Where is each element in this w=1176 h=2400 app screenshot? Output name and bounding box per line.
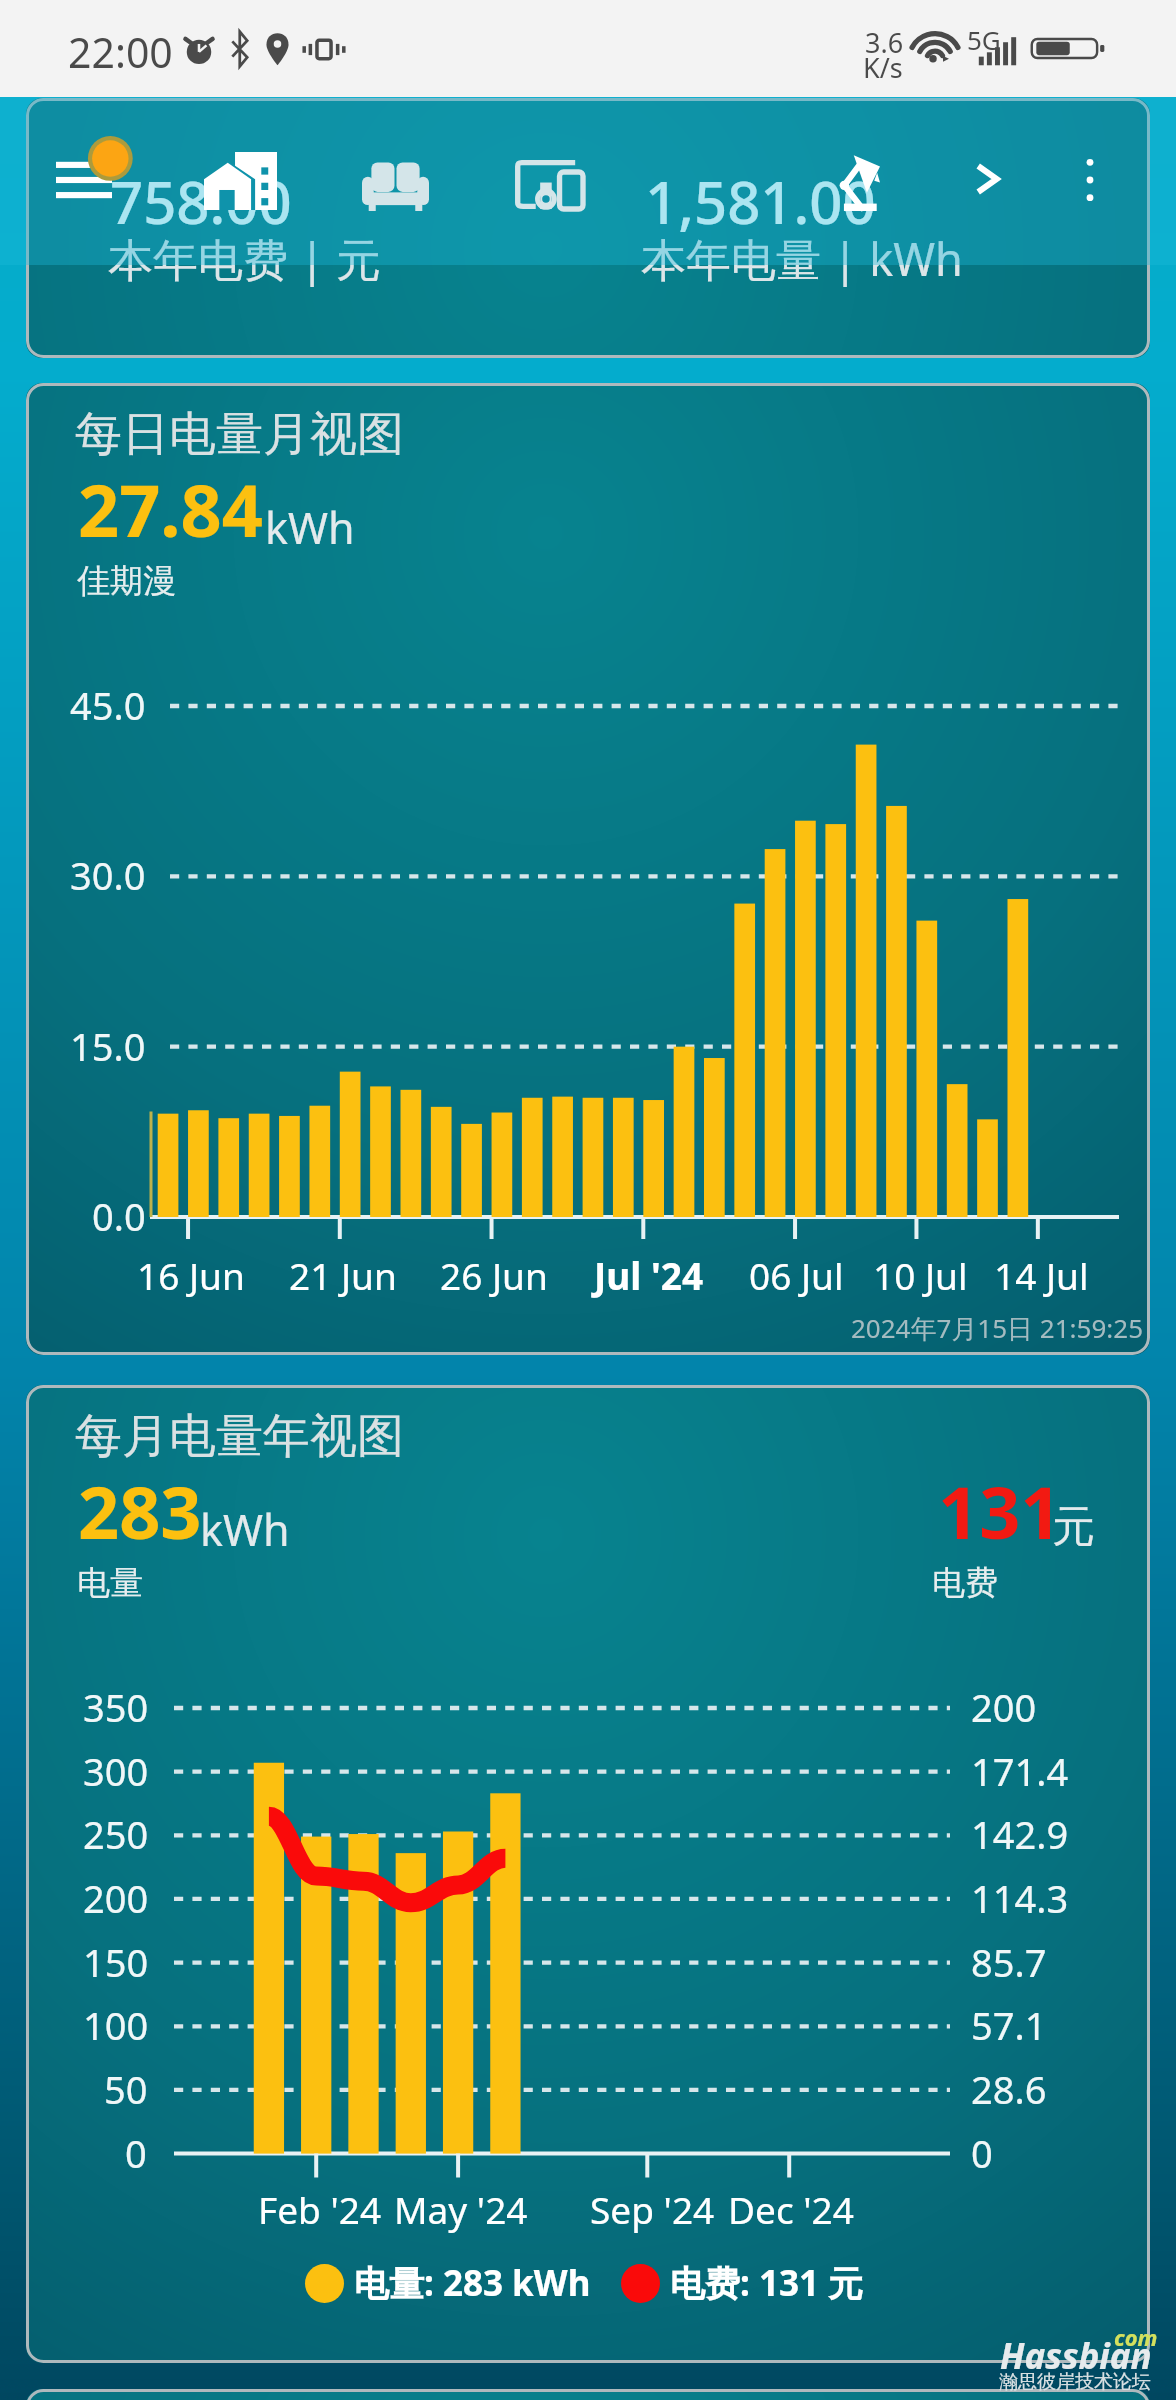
staticText: 350 [83,1681,149,1733]
staticText: 131 [938,1462,1062,1560]
staticText: 瀚思彼岸技术论坛 [999,2370,1151,2394]
staticText: 200 [83,1872,149,1924]
staticText: 150 [83,1936,149,1988]
staticText: 14 Jul [994,1250,1089,1300]
button[interactable]: Overflow menu [1035,125,1145,235]
staticText: 每日电量月视图 [75,405,404,464]
staticText: 22:00 [68,24,173,80]
staticText: 5G [967,22,1001,57]
staticText: com [1114,2322,1158,2352]
staticText: 10 Jul [873,1250,968,1300]
button[interactable]: Living room [340,131,450,241]
staticText: 3.6 [865,24,904,61]
staticText: 50 [104,2063,148,2115]
button[interactable]: Lights [804,127,914,237]
staticText: 本年电费 | 元 [108,228,382,289]
staticText: 28.6 [971,2063,1047,2115]
staticText: 06 Jul [749,1250,844,1300]
staticText: Hassbian [1000,2332,1152,2380]
staticText: May '24 [394,2184,528,2234]
staticText: 0.0 [92,1190,146,1242]
staticText: 21 Jun [289,1250,397,1300]
staticText: 300 [83,1745,149,1797]
staticText: 电量: 283 kWh [354,2259,591,2307]
staticText: 171.4 [971,1745,1069,1797]
staticText: 758.00 [110,162,292,241]
staticText: 15.0 [70,1020,146,1072]
staticText: K/s [863,49,903,86]
staticText: 30.0 [70,849,146,901]
staticText: 114.3 [971,1872,1069,1924]
staticText: 2024年7月15日 21:59:25 [851,1310,1144,1346]
staticText: 0 [971,2127,993,2179]
button[interactable]: Devices [494,129,604,239]
staticText: Sep '24 [590,2184,715,2234]
staticText: 0 [125,2127,147,2179]
staticText: kWh [200,1500,290,1559]
staticText: 电量 [77,1562,143,1604]
staticText: 本年电量 | kWh [641,228,963,289]
staticText: 283 [78,1462,202,1560]
staticText: 1,581.00 [645,162,876,241]
staticText: 佳期漫 [77,560,176,602]
staticText: 27.84 [78,460,263,558]
staticText: 200 [971,1681,1037,1733]
staticText: Feb '24 [258,2184,382,2234]
staticText: Dec '24 [728,2184,854,2234]
staticText: 100 [83,1999,149,2051]
staticText: 142.9 [971,1808,1069,1860]
staticText: 电费: 131 元 [670,2259,864,2307]
button[interactable]: Menu [29,126,139,236]
staticText: 电费 [932,1562,998,1604]
button[interactable]: Home [185,126,295,236]
button[interactable]: More tabs [932,124,1042,234]
staticText: 57.1 [971,1999,1047,2051]
staticText: 16 Jun [137,1250,245,1300]
staticText: 250 [83,1808,149,1860]
staticText: 每月电量年视图 [75,1407,404,1466]
staticText: 元 [1052,1500,1095,1554]
staticText: Jul '24 [594,1250,704,1300]
staticText: kWh [265,498,355,557]
staticText: 45.0 [70,679,146,731]
staticText: 85.7 [971,1936,1047,1988]
staticText: 26 Jun [440,1250,548,1300]
